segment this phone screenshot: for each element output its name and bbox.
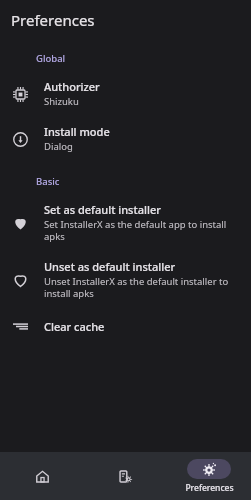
staticText: Unset InstallerX as the default installe… — [44, 275, 237, 300]
button[interactable]: Install mode — [0, 116, 251, 161]
staticText: Global — [36, 52, 66, 65]
staticText: Install mode — [44, 124, 110, 139]
staticText: Shizuku — [44, 95, 79, 108]
button[interactable]: Clear cache — [0, 308, 251, 344]
button[interactable]: Preferences — [167, 452, 251, 500]
staticText: Set InstallerX as the default app to ins… — [44, 218, 237, 243]
staticText: Clear cache — [44, 319, 105, 334]
button[interactable]: Home — [0, 452, 83, 500]
staticText: Preferences — [11, 10, 95, 30]
button[interactable]: Unset as default installer — [0, 251, 251, 308]
button[interactable]: Authorizer — [0, 71, 251, 116]
staticText: Basic — [36, 175, 60, 188]
button[interactable]: Installer settings — [83, 452, 167, 500]
staticText: Set as default installer — [44, 202, 161, 217]
staticText: Dialog — [44, 140, 73, 153]
staticText: Unset as default installer — [44, 259, 176, 274]
staticText: Authorizer — [44, 79, 100, 94]
staticText: Preferences — [185, 482, 234, 494]
button[interactable]: Set as default installer — [0, 194, 251, 251]
